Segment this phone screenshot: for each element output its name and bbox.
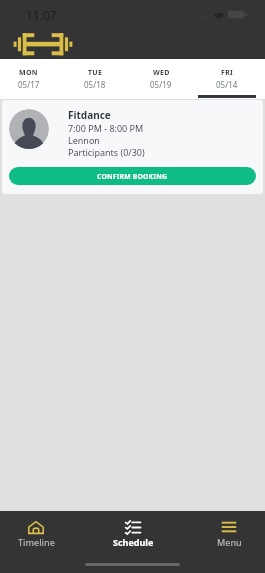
button[interactable]: TUE [62, 59, 128, 100]
other: Battery [228, 10, 247, 19]
button[interactable]: FRI [194, 59, 260, 100]
button[interactable]: Timeline [10, 520, 62, 552]
staticText: TUE [88, 68, 103, 78]
staticText: Menu [217, 536, 242, 548]
other: Timeline [28, 521, 44, 534]
staticText: 05/18 [84, 79, 106, 90]
other: Schedule [125, 521, 141, 534]
button[interactable]: WED [128, 59, 194, 100]
staticText: 7:00 PM - 8:00 PM [68, 122, 144, 134]
button[interactable]: Fitdance [2, 100, 263, 194]
staticText: 05/19 [150, 79, 172, 90]
staticText: MON [19, 68, 38, 78]
staticText: 11:07 [26, 7, 57, 23]
staticText: Timeline [18, 536, 55, 548]
staticText: Fitdance [68, 108, 111, 122]
other: Menu [222, 521, 236, 533]
staticText: Schedule [113, 536, 154, 548]
button[interactable]: CONFIRM BOOKING [9, 167, 256, 185]
staticText: 05/14 [216, 79, 238, 90]
button[interactable]: Schedule [107, 520, 159, 552]
staticText: 05/17 [18, 79, 40, 90]
other: Wifi [214, 11, 224, 19]
staticText: FRI [221, 68, 234, 78]
button[interactable]: Menu [203, 520, 255, 552]
staticText: Participants (0/30) [68, 146, 145, 158]
staticText: WED [153, 68, 170, 78]
button[interactable]: MON [0, 59, 62, 100]
staticText: CONFIRM BOOKING [97, 172, 168, 181]
staticText: Lennon [68, 134, 100, 146]
